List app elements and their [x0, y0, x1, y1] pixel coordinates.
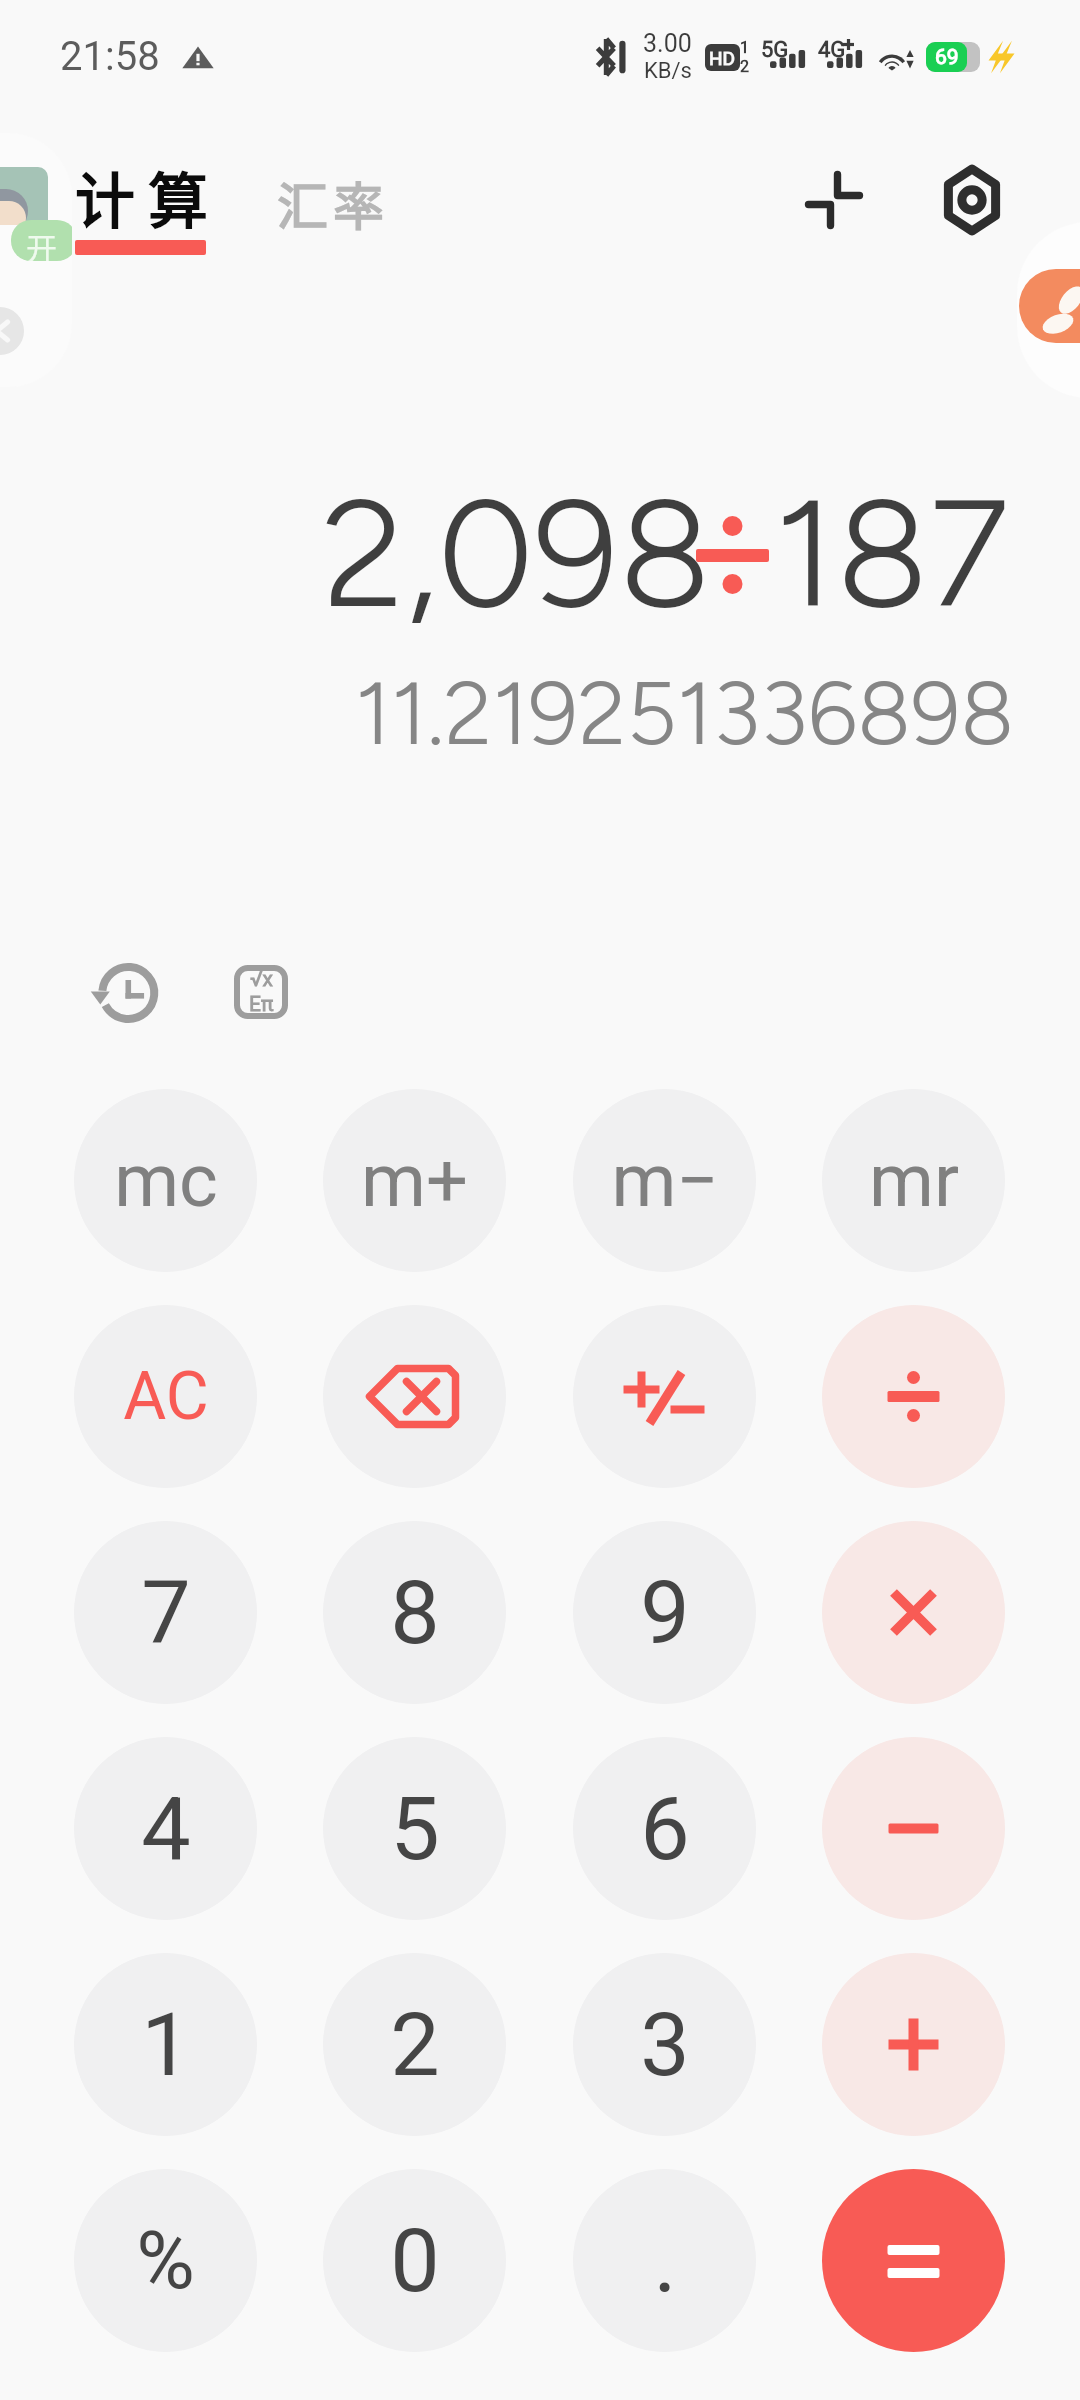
staticText: m− [611, 1137, 719, 1224]
button[interactable]: Scientific calculator [217, 948, 305, 1036]
button[interactable]: Floating shortcut [1017, 222, 1080, 398]
staticText: 9 [640, 1561, 690, 1664]
button[interactable]: 5 [323, 1737, 506, 1920]
button[interactable]: AC [74, 1305, 257, 1488]
button[interactable]: 0 [323, 2169, 506, 2352]
staticText: 69 [935, 45, 959, 70]
button[interactable]: m+ [323, 1089, 506, 1272]
button[interactable]: Plus minus [573, 1305, 756, 1488]
staticText: 汇率 [277, 166, 390, 240]
button[interactable]: 计算 [66, 150, 214, 268]
staticText: 开 [26, 224, 57, 261]
button[interactable]: Plus [822, 1953, 1005, 2136]
staticText: Eπ [249, 992, 274, 1017]
staticText: 5 [390, 1777, 440, 1880]
button[interactable]: 9 [573, 1521, 756, 1704]
button[interactable]: 4 [74, 1737, 257, 1920]
button[interactable]: 3 [573, 1953, 756, 2136]
button[interactable]: Equals [822, 2169, 1005, 2352]
staticText: 5G [761, 37, 789, 63]
staticText: 4G [818, 37, 846, 63]
staticText: HD [709, 47, 736, 69]
staticText: mr [869, 1137, 959, 1224]
button[interactable]: 8 [323, 1521, 506, 1704]
button[interactable]: History [82, 949, 170, 1037]
button[interactable]: Floating assistant [0, 133, 72, 387]
staticText: 21:58 [60, 33, 160, 80]
button[interactable]: 汇率 [266, 158, 392, 242]
staticText: 2 [740, 57, 749, 76]
button[interactable]: m− [573, 1089, 756, 1272]
staticText: m+ [361, 1137, 468, 1224]
button[interactable]: Settings [928, 156, 1016, 244]
staticText: 187 [774, 463, 1009, 644]
staticText: 8 [390, 1561, 440, 1664]
staticText: 计算 [75, 153, 221, 240]
staticText: 4 [141, 1777, 191, 1880]
staticText: 2 [390, 1993, 440, 2096]
staticText: 6 [640, 1777, 690, 1880]
button[interactable]: Multiply [822, 1521, 1005, 1704]
staticText: 7 [141, 1561, 191, 1664]
staticText: 11.219251336898 [355, 660, 1015, 766]
staticText: AC [123, 1358, 209, 1435]
staticText: KB/s [644, 58, 692, 84]
staticText: mc [114, 1137, 218, 1224]
staticText: 0 [390, 2209, 440, 2312]
button[interactable]: 6 [573, 1737, 756, 1920]
staticText: 3 [640, 1993, 690, 2096]
staticText: . [653, 2209, 677, 2312]
staticText: % [136, 2214, 195, 2308]
button[interactable]: Minus [822, 1737, 1005, 1920]
button[interactable]: Backspace [323, 1305, 506, 1488]
button[interactable]: Divide [822, 1305, 1005, 1488]
staticText: √x [250, 967, 273, 992]
staticText: 3.00 [643, 29, 692, 58]
staticText: 1 [141, 1993, 191, 2096]
button[interactable]: 1 [74, 1953, 257, 2136]
button[interactable]: Split screen [790, 157, 878, 245]
button[interactable]: mr [822, 1089, 1005, 1272]
staticText: 2,098 [322, 463, 712, 644]
button[interactable]: 2 [323, 1953, 506, 2136]
staticText: 1 [740, 38, 749, 57]
button[interactable]: 7 [74, 1521, 257, 1704]
button[interactable]: mc [74, 1089, 257, 1272]
button[interactable]: . [573, 2169, 756, 2352]
button[interactable]: % [74, 2169, 257, 2352]
